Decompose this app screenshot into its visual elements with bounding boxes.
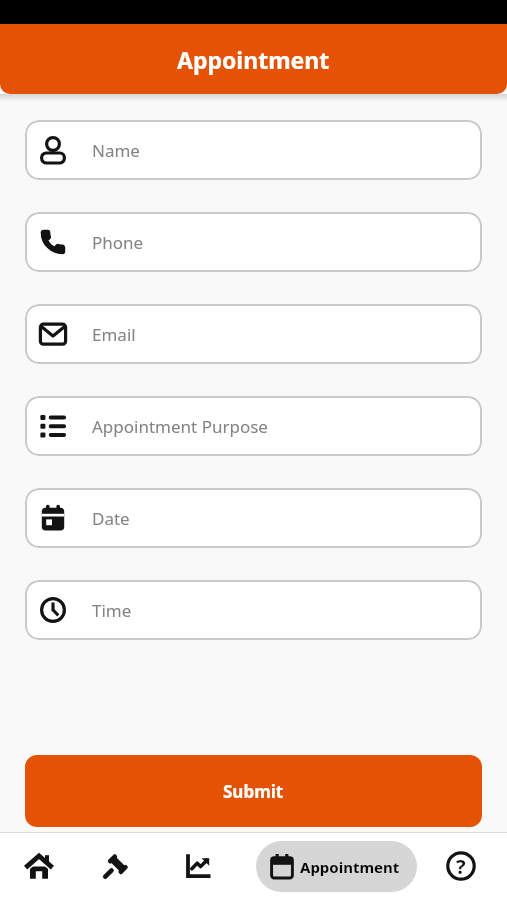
button[interactable]: ? — [445, 850, 477, 882]
staticText: Time — [92, 599, 132, 622]
staticText: Appointment — [300, 857, 400, 877]
button[interactable]: Time — [25, 580, 482, 640]
button[interactable] — [183, 851, 213, 881]
button[interactable] — [101, 851, 131, 881]
button[interactable]: Name — [25, 120, 482, 180]
button[interactable]: Phone — [25, 212, 482, 272]
staticText: Email — [92, 323, 136, 346]
staticText: Appointment — [177, 44, 330, 75]
button[interactable]: Submit — [25, 755, 482, 827]
button[interactable]: Date — [25, 488, 482, 548]
staticText: Submit — [223, 780, 284, 803]
button[interactable]: Email — [25, 304, 482, 364]
staticText: Date — [92, 507, 130, 530]
staticText: Phone — [92, 231, 144, 254]
staticText: Appointment Purpose — [92, 415, 268, 438]
button[interactable]: Appointment — [256, 841, 417, 892]
staticText: ? — [456, 853, 466, 880]
button[interactable]: Appointment Purpose — [25, 396, 482, 456]
staticText: Name — [92, 139, 140, 162]
button[interactable] — [24, 851, 54, 881]
